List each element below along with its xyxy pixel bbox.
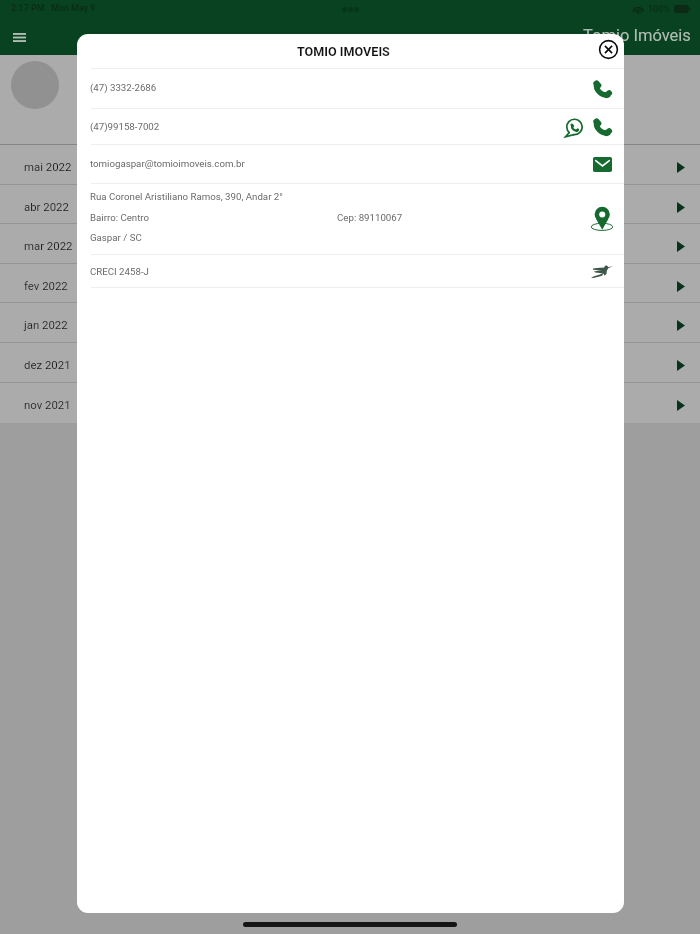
button[interactable]: jan 2022 bbox=[0, 303, 700, 342]
staticText: jan 2022 bbox=[24, 318, 68, 331]
button[interactable]: nov 2021 bbox=[0, 384, 700, 423]
button[interactable]: Open navigation menu bbox=[5, 23, 33, 51]
button[interactable]: fev 2022 bbox=[0, 264, 700, 303]
button[interactable]: Call (47) 99158-7002 bbox=[587, 112, 617, 142]
staticText: Cep: 89110067 bbox=[337, 212, 403, 223]
staticText: 100% bbox=[648, 4, 670, 14]
staticText: (47) 3332-2686 bbox=[90, 82, 157, 93]
button[interactable]: Close bbox=[595, 36, 621, 62]
staticText: mar 2022 bbox=[24, 239, 73, 252]
staticText: (47)99158-7002 bbox=[90, 121, 160, 132]
button[interactable]: abr 2022 bbox=[0, 185, 700, 224]
button[interactable]: Call (47) 3332-2686 bbox=[587, 74, 617, 104]
button[interactable]: nov 2021 bbox=[0, 383, 700, 422]
button[interactable]: Send e-mail bbox=[587, 149, 617, 179]
staticText: 2:17 PM Mon May 9 bbox=[11, 3, 96, 13]
staticText: nov 2021 bbox=[24, 398, 71, 411]
staticText: dez 2021 bbox=[24, 358, 71, 371]
button[interactable]: mar 2022 bbox=[0, 224, 700, 263]
button[interactable]: Open map location bbox=[587, 204, 617, 234]
button[interactable]: dez 2021 bbox=[0, 343, 700, 382]
button[interactable]: Open WhatsApp chat bbox=[559, 112, 589, 142]
staticText: Gaspar / SC bbox=[90, 232, 142, 243]
staticText: CRECI 2458-J bbox=[90, 266, 149, 277]
staticText: nov 2021 bbox=[24, 398, 71, 411]
staticText: Bairro: Centro bbox=[90, 212, 150, 223]
staticText: TOMIO IMOVEIS bbox=[297, 44, 390, 59]
staticText: tomiogaspar@tomioimoveis.com.br bbox=[90, 158, 245, 169]
staticText: abr 2022 bbox=[24, 200, 69, 213]
staticText: Rua Coronel Aristiliano Ramos, 390, Anda… bbox=[90, 191, 283, 202]
staticText: mai 2022 bbox=[24, 160, 72, 173]
staticText: Tomio Imóveis bbox=[583, 26, 691, 45]
staticText: fev 2022 bbox=[24, 279, 68, 292]
button[interactable]: mai 2022 bbox=[0, 145, 700, 184]
